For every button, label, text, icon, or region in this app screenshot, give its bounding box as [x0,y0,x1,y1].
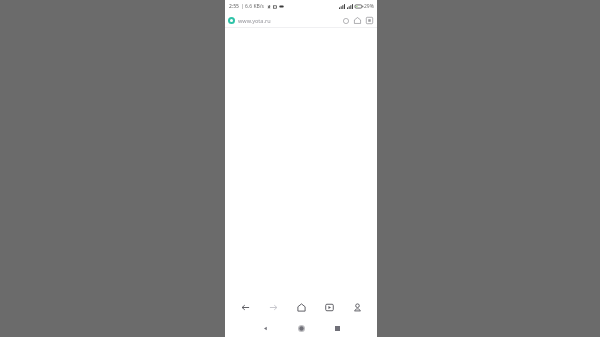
staticText: | 6.6 KB/s [241,3,265,10]
staticText: 2:55 [229,3,239,10]
button[interactable]: Bookmark [353,16,362,25]
staticText: 29% [364,3,374,10]
button[interactable]: Reload [341,16,350,25]
staticText: www.yota.ru [238,17,271,24]
button[interactable]: Home [283,319,319,337]
button[interactable]: Profile [343,295,371,319]
button[interactable]: Tabs [365,16,374,25]
button[interactable]: Back [231,295,259,319]
button[interactable]: Back [247,319,283,337]
button[interactable]: Recents [319,319,355,337]
button[interactable]: www.yota.ru [228,17,271,24]
button[interactable]: Tabs [315,295,343,319]
button[interactable]: Forward [259,295,287,319]
button[interactable]: Home [287,295,315,319]
